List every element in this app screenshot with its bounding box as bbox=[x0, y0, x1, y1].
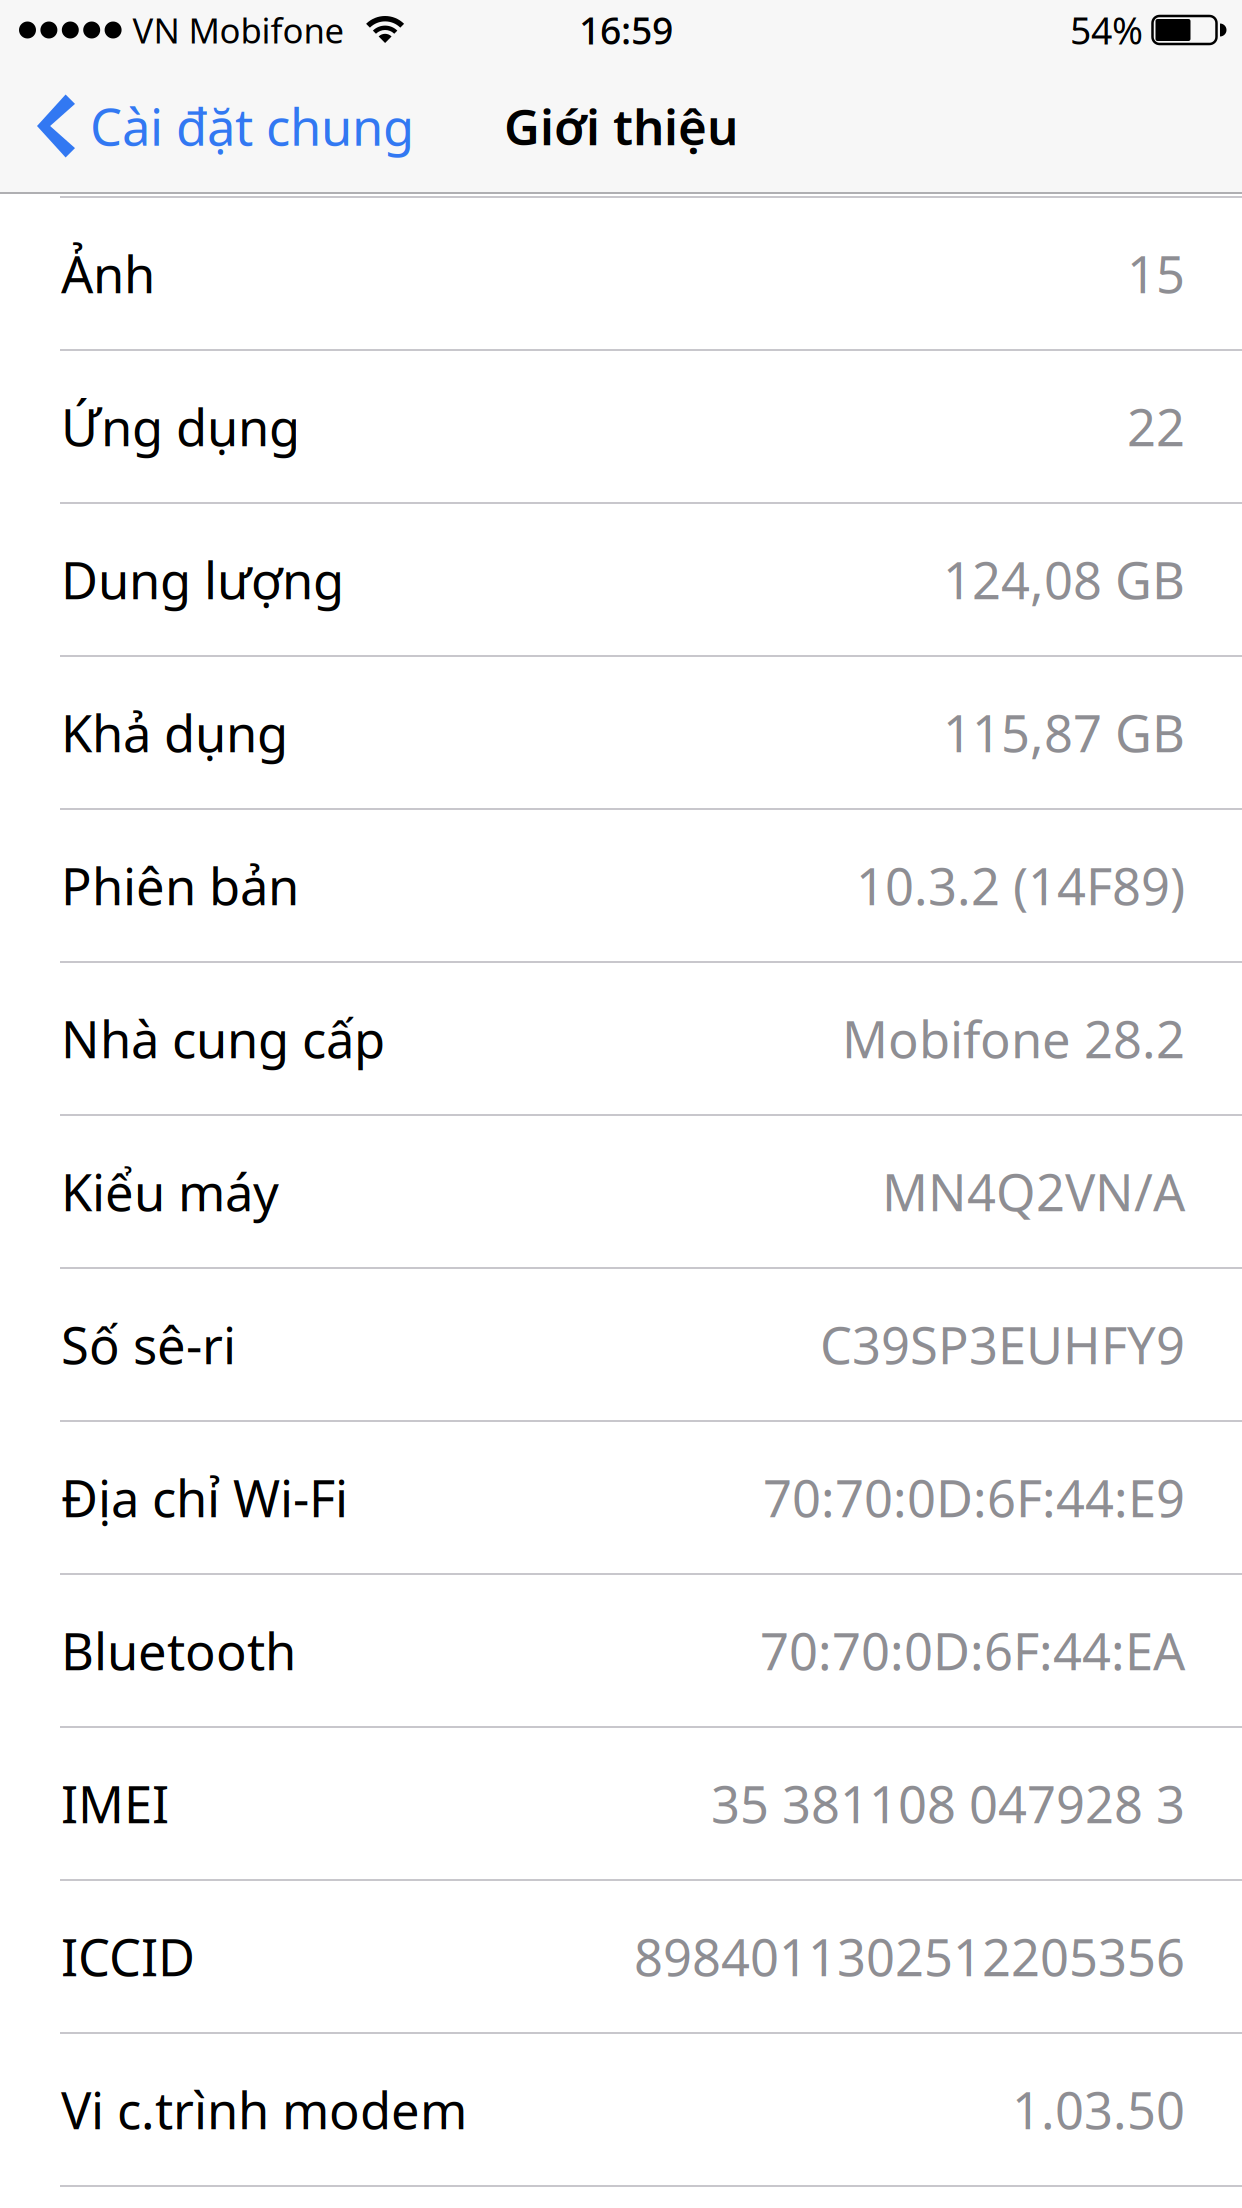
staticText: Khả dụng bbox=[61, 699, 288, 766]
staticText: IMEI bbox=[61, 1770, 169, 1837]
button[interactable]: Vi c.trình modem bbox=[0, 2034, 1242, 2185]
button[interactable]: Dung lượng bbox=[0, 504, 1242, 655]
staticText: Địa chỉ Wi-Fi bbox=[61, 1464, 348, 1531]
button[interactable]: Nhà cung cấp bbox=[0, 963, 1242, 1114]
button[interactable]: Khả dụng bbox=[0, 657, 1242, 808]
staticText: 124,08 GB bbox=[943, 546, 1185, 613]
staticText: MN4Q2VN/A bbox=[882, 1158, 1185, 1225]
staticText: Giới thiệu bbox=[504, 93, 738, 159]
staticText: 8984011302512205356 bbox=[634, 1923, 1185, 1990]
staticText: 1.03.50 bbox=[1012, 2076, 1185, 2143]
button[interactable]: Số sê-ri bbox=[0, 1269, 1242, 1420]
button[interactable]: Kiểu máy bbox=[0, 1116, 1242, 1267]
staticText: Dung lượng bbox=[61, 546, 344, 613]
staticText: VN Mobifone bbox=[133, 7, 345, 53]
staticText: 15 bbox=[1127, 240, 1185, 307]
button[interactable]: Phiên bản bbox=[0, 810, 1242, 961]
staticText: Ứng dụng bbox=[61, 393, 300, 460]
staticText: Ảnh bbox=[61, 240, 155, 307]
staticText: 70:70:0D:6F:44:EA bbox=[760, 1617, 1185, 1684]
staticText: 22 bbox=[1127, 393, 1185, 460]
staticText: C39SP3EUHFY9 bbox=[820, 1311, 1185, 1378]
button[interactable]: Bluetooth bbox=[0, 1575, 1242, 1726]
button[interactable]: Ảnh bbox=[0, 198, 1242, 349]
staticText: Bluetooth bbox=[61, 1617, 296, 1684]
staticText: Phiên bản bbox=[61, 852, 299, 919]
button[interactable]: IMEI bbox=[0, 1728, 1242, 1879]
staticText: Kiểu máy bbox=[61, 1158, 279, 1225]
staticText: 70:70:0D:6F:44:E9 bbox=[763, 1464, 1185, 1531]
staticText: ICCID bbox=[61, 1923, 195, 1990]
button[interactable]: Địa chỉ Wi-Fi bbox=[0, 1422, 1242, 1573]
staticText: 115,87 GB bbox=[943, 699, 1185, 766]
staticText: 35 381108 047928 3 bbox=[711, 1770, 1185, 1837]
staticText: Nhà cung cấp bbox=[61, 1005, 385, 1072]
staticText: 54% bbox=[1070, 5, 1143, 55]
button[interactable]: Cài đặt chung bbox=[0, 60, 438, 192]
staticText: Mobifone 28.2 bbox=[842, 1005, 1185, 1072]
staticText: Cài đặt chung bbox=[90, 92, 414, 160]
staticText: 16:59 bbox=[579, 5, 673, 55]
staticText: Số sê-ri bbox=[61, 1311, 236, 1378]
staticText: 10.3.2 (14F89) bbox=[856, 852, 1185, 919]
button[interactable]: ICCID bbox=[0, 1881, 1242, 2032]
button[interactable]: Ứng dụng bbox=[0, 351, 1242, 502]
staticText: Vi c.trình modem bbox=[61, 2076, 467, 2143]
